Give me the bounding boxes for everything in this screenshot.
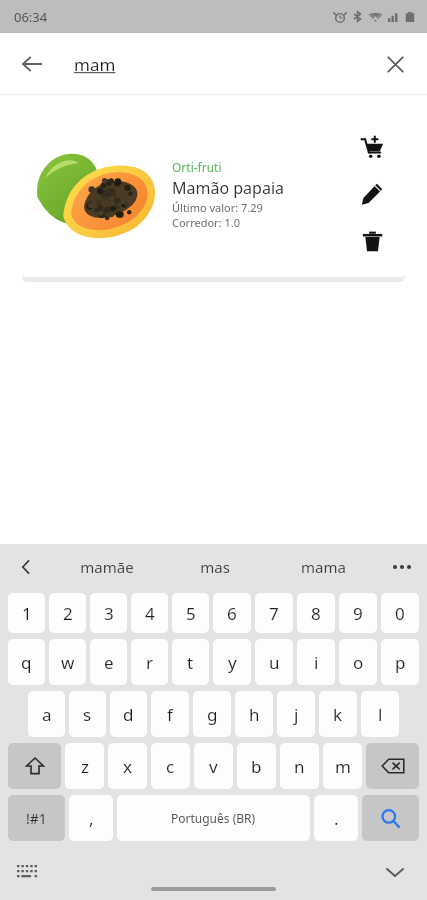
staticText: s bbox=[83, 703, 92, 726]
staticText: , bbox=[89, 807, 94, 830]
button[interactable]: i bbox=[297, 639, 335, 685]
button[interactable]: p bbox=[381, 639, 419, 685]
staticText: Português (BR) bbox=[171, 810, 256, 826]
staticText: 4 bbox=[145, 602, 155, 625]
staticText: mama bbox=[301, 557, 346, 577]
button[interactable]: mama bbox=[269, 544, 377, 590]
button[interactable]: r bbox=[131, 639, 168, 685]
staticText: 8 bbox=[311, 602, 321, 625]
staticText: p bbox=[395, 651, 406, 674]
button[interactable]: Orti-fruti bbox=[22, 111, 405, 277]
button[interactable]: z bbox=[65, 743, 104, 789]
staticText: f bbox=[167, 703, 173, 726]
button[interactable]: x bbox=[108, 743, 147, 789]
button[interactable]: Hide keyboard bbox=[373, 850, 417, 894]
button[interactable]: n bbox=[280, 743, 319, 789]
button[interactable]: Delete bbox=[351, 220, 393, 262]
staticText: v bbox=[209, 755, 218, 778]
staticText: 1 bbox=[22, 602, 32, 625]
staticText: r bbox=[146, 651, 154, 674]
staticText: 2 bbox=[63, 602, 73, 625]
button[interactable]: b bbox=[237, 743, 276, 789]
staticText: j bbox=[294, 703, 299, 726]
staticText: 9 bbox=[353, 602, 363, 625]
staticText: t bbox=[187, 651, 194, 674]
staticText: n bbox=[294, 755, 305, 778]
staticText: l bbox=[378, 703, 383, 726]
button[interactable]: g bbox=[193, 691, 231, 737]
staticText: mam bbox=[74, 53, 116, 76]
button[interactable]: Back bbox=[8, 40, 56, 88]
button[interactable]: e bbox=[90, 639, 127, 685]
button[interactable]: j bbox=[277, 691, 315, 737]
staticText: c bbox=[166, 755, 175, 778]
button[interactable]: mas bbox=[161, 544, 269, 590]
button[interactable]: Edit bbox=[351, 173, 393, 215]
button[interactable]: w bbox=[49, 639, 86, 685]
staticText: 5 bbox=[186, 602, 196, 625]
staticText: k bbox=[333, 703, 343, 726]
staticText: Orti-fruti bbox=[172, 159, 222, 175]
staticText: !#1 bbox=[26, 809, 47, 828]
button[interactable]: o bbox=[339, 639, 377, 685]
button[interactable]: u bbox=[255, 639, 293, 685]
button[interactable]: Search bbox=[362, 795, 419, 841]
staticText: m bbox=[335, 755, 351, 778]
staticText: 7 bbox=[269, 602, 279, 625]
button[interactable]: Previous suggestions bbox=[0, 544, 52, 590]
staticText: 6 bbox=[227, 602, 237, 625]
staticText: g bbox=[207, 703, 218, 726]
button[interactable]: y bbox=[213, 639, 251, 685]
staticText: 0 bbox=[395, 602, 405, 625]
button[interactable]: 7 bbox=[255, 593, 293, 633]
button[interactable]: s bbox=[69, 691, 106, 737]
button[interactable]: h bbox=[235, 691, 273, 737]
staticText: z bbox=[81, 755, 89, 778]
button[interactable]: 3 bbox=[90, 593, 127, 633]
staticText: b bbox=[251, 755, 262, 778]
button[interactable]: 9 bbox=[339, 593, 377, 633]
button[interactable]: v bbox=[194, 743, 233, 789]
button[interactable]: 5 bbox=[172, 593, 209, 633]
button[interactable]: Português (BR) bbox=[117, 795, 310, 841]
button[interactable]: More options bbox=[377, 544, 427, 590]
staticText: o bbox=[353, 651, 364, 674]
staticText: 06:34 bbox=[14, 8, 48, 26]
staticText: Mamão papaia bbox=[172, 177, 285, 199]
button[interactable]: q bbox=[8, 639, 45, 685]
button[interactable]: 0 bbox=[381, 593, 419, 633]
button[interactable]: 8 bbox=[297, 593, 335, 633]
button[interactable]: 6 bbox=[213, 593, 251, 633]
button[interactable]: Change keyboard bbox=[8, 852, 48, 892]
staticText: Último valor: 7.29 bbox=[172, 200, 263, 215]
button[interactable]: 1 bbox=[8, 593, 45, 633]
staticText: h bbox=[249, 703, 260, 726]
button[interactable]: Clear search bbox=[371, 40, 419, 88]
button[interactable]: Add to cart bbox=[351, 126, 393, 168]
button[interactable]: !#1 bbox=[8, 795, 65, 841]
button[interactable]: Shift bbox=[8, 743, 61, 789]
button[interactable]: . bbox=[314, 795, 358, 841]
staticText: i bbox=[314, 651, 319, 674]
button[interactable]: k bbox=[319, 691, 357, 737]
button[interactable]: m bbox=[323, 743, 362, 789]
button[interactable]: d bbox=[110, 691, 147, 737]
staticText: w bbox=[61, 651, 75, 674]
button[interactable]: c bbox=[151, 743, 190, 789]
button[interactable]: l bbox=[361, 691, 399, 737]
staticText: Corredor: 1.0 bbox=[172, 215, 240, 230]
button[interactable]: 4 bbox=[131, 593, 168, 633]
staticText: mas bbox=[200, 557, 230, 577]
staticText: q bbox=[21, 651, 32, 674]
button[interactable]: 2 bbox=[49, 593, 86, 633]
staticText: mamãe bbox=[80, 557, 134, 577]
button[interactable]: mamãe bbox=[52, 544, 161, 590]
button[interactable]: t bbox=[172, 639, 209, 685]
button[interactable]: a bbox=[28, 691, 65, 737]
button[interactable]: f bbox=[151, 691, 189, 737]
button[interactable]: Backspace bbox=[366, 743, 419, 789]
staticText: e bbox=[104, 651, 114, 674]
button[interactable]: , bbox=[69, 795, 113, 841]
staticText: x bbox=[123, 755, 132, 778]
staticText: d bbox=[123, 703, 134, 726]
